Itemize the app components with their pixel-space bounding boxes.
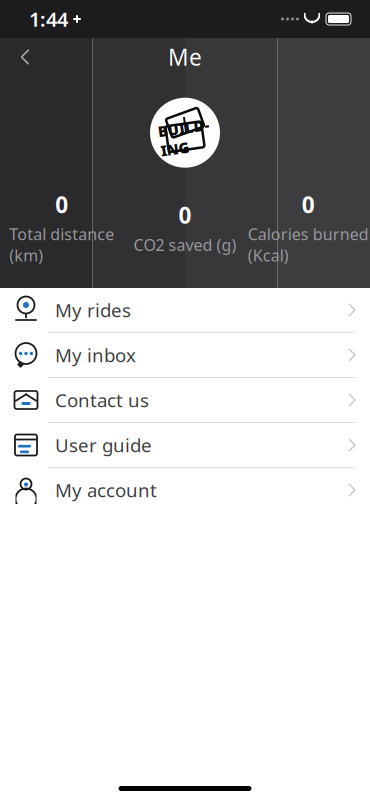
staticText: Me [168, 42, 202, 72]
button[interactable]: My inbox [0, 333, 370, 378]
button[interactable]: User guide [0, 423, 370, 468]
staticText: CO2 saved (g) [133, 234, 236, 255]
staticText: My account [55, 478, 157, 502]
staticText: BUILDING [159, 118, 211, 157]
staticText: 0 [178, 200, 191, 230]
staticText: User guide [55, 433, 152, 457]
staticText: My rides [55, 298, 131, 322]
button[interactable]: My account [0, 468, 370, 513]
staticText: Calories burned (Kcal) [248, 223, 369, 266]
staticText: 1:44 [29, 6, 68, 32]
staticText: 0 [55, 189, 68, 219]
staticText: 0 [302, 189, 315, 219]
staticText: My inbox [55, 343, 136, 367]
staticText: Total distance (km) [9, 223, 114, 266]
button[interactable]: Back [5, 37, 45, 77]
button[interactable]: My rides [0, 288, 370, 333]
staticText: Contact us [55, 388, 149, 412]
button[interactable]: Contact us [0, 378, 370, 423]
